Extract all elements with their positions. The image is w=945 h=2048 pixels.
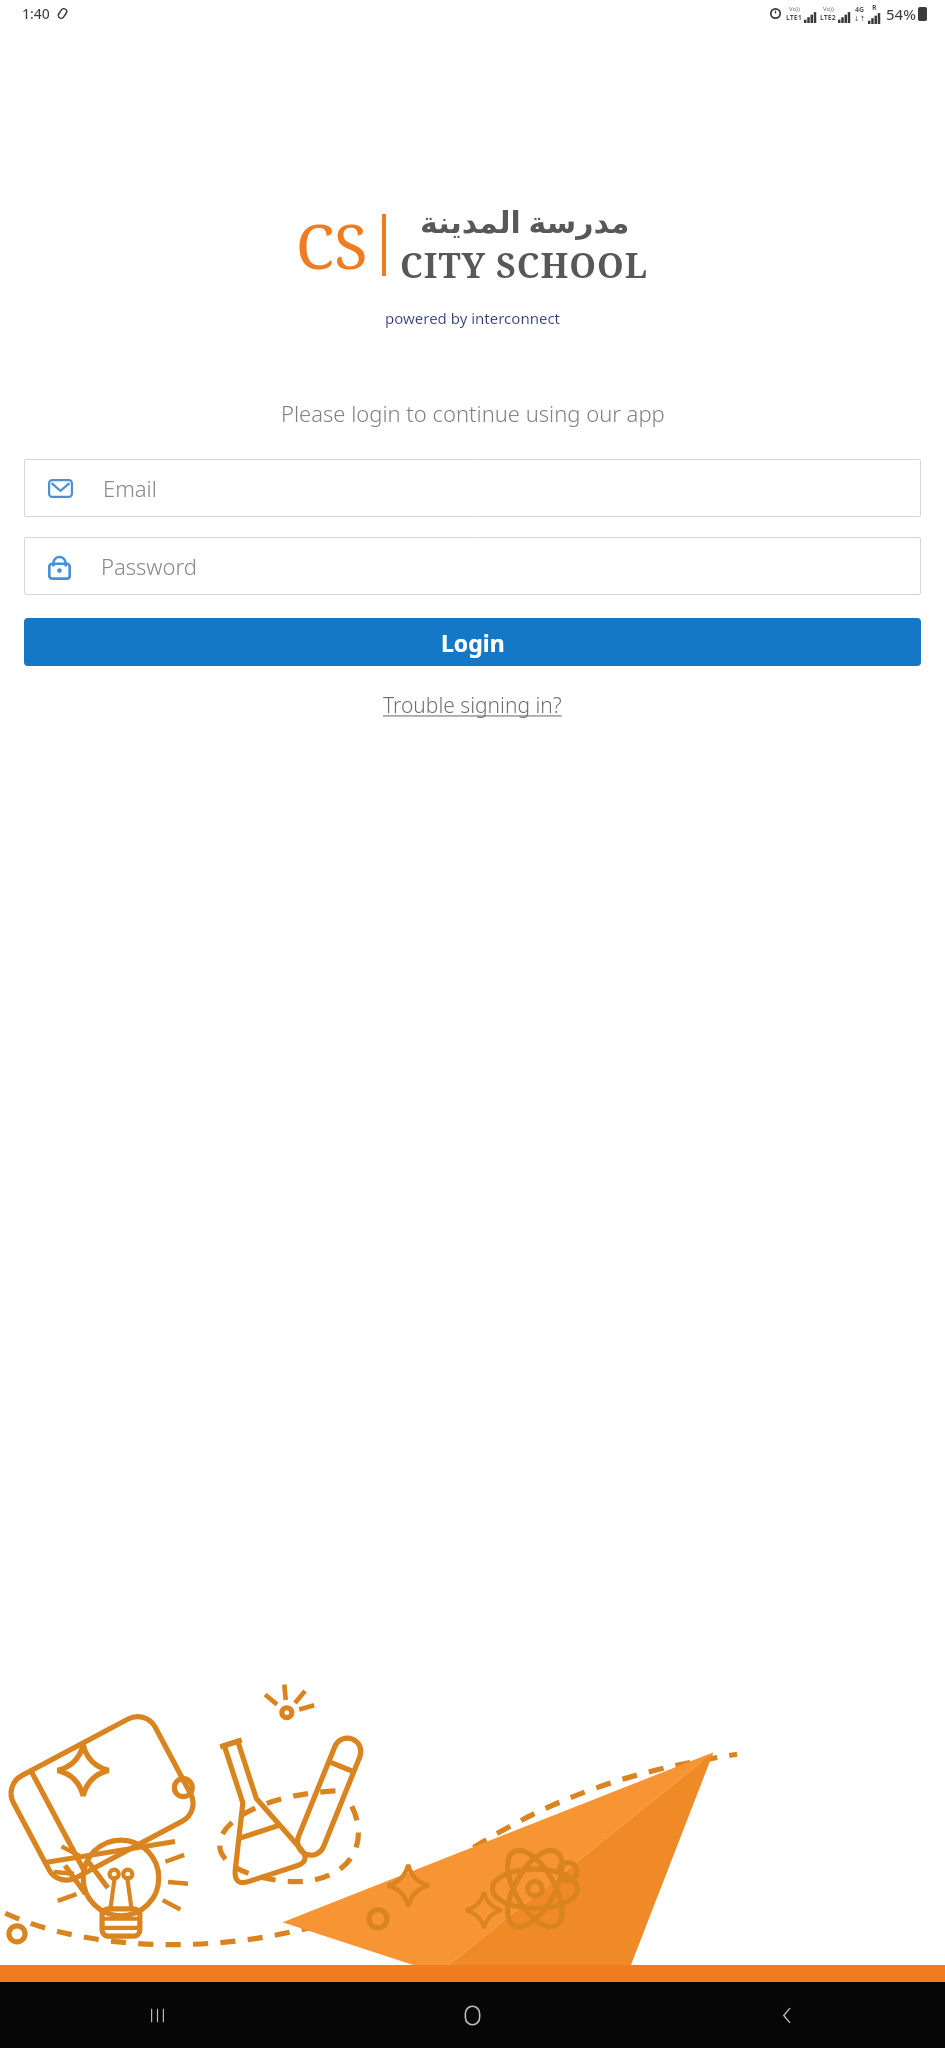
staticText: 1:40 [22, 4, 50, 23]
staticText: Vo)) [823, 5, 834, 13]
button[interactable]: Back [630, 1982, 945, 2048]
staticText: مدرسة المدينة [420, 201, 630, 242]
staticText: ↓↑ [854, 15, 866, 23]
button[interactable]: Login [24, 618, 921, 666]
staticText: Trouble signing in? [383, 691, 562, 720]
staticText: 4G [855, 5, 865, 15]
staticText: Vo)) [789, 5, 800, 13]
staticText: LTE1 [786, 13, 802, 23]
staticText: Login [441, 627, 505, 658]
staticText: CITY SCHOOL [400, 242, 649, 288]
staticText: Email [103, 473, 157, 503]
staticText: Password [101, 551, 197, 581]
staticText: CS [296, 203, 368, 287]
staticText: LTE2 [820, 13, 836, 23]
staticText: Please login to continue using our app [281, 398, 665, 428]
staticText: 54% [886, 4, 916, 24]
button[interactable]: Trouble signing in? [365, 682, 580, 729]
button[interactable]: Email [24, 459, 921, 517]
button[interactable]: Home [315, 1982, 630, 2048]
button[interactable]: Password [24, 537, 921, 595]
button[interactable]: Recent apps [0, 1982, 315, 2048]
staticText: R [872, 3, 877, 13]
staticText: powered by interconnect [385, 308, 561, 328]
